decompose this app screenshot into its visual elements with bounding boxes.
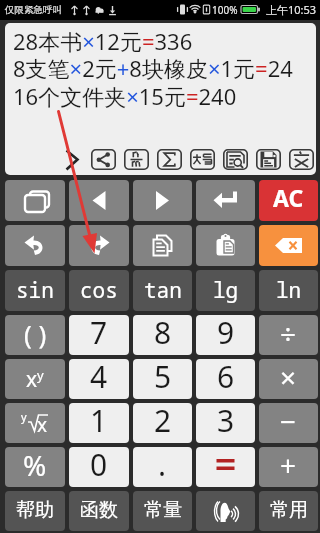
- button[interactable]: Expand: [61, 149, 83, 171]
- staticText: 7: [90, 315, 108, 352]
- staticText: AC: [273, 182, 304, 213]
- staticText: 5: [154, 359, 172, 396]
- button[interactable]: 帮助: [5, 491, 65, 531]
- staticText: .: [158, 447, 167, 484]
- button[interactable]: 0: [69, 447, 129, 487]
- staticText: x: [37, 412, 48, 438]
- staticText: 100%: [212, 3, 238, 17]
- staticText: 1: [90, 403, 108, 440]
- button[interactable]: Sum: [157, 149, 182, 170]
- staticText: 常用: [270, 498, 308, 522]
- button[interactable]: 1: [69, 403, 129, 443]
- button[interactable]: −: [259, 403, 318, 443]
- button[interactable]: Move right: [133, 180, 192, 221]
- staticText: ln: [276, 276, 302, 305]
- staticText: 8: [154, 315, 172, 352]
- button[interactable]: Fraction: [124, 149, 149, 170]
- button[interactable]: 3: [196, 403, 255, 443]
- staticText: 3: [217, 403, 235, 440]
- staticText: tan: [144, 276, 182, 305]
- button[interactable]: AC: [259, 180, 318, 221]
- button[interactable]: Text: [289, 149, 314, 170]
- staticText: ( ): [24, 316, 47, 351]
- button[interactable]: ( ): [5, 315, 65, 355]
- staticText: 帮助: [16, 498, 54, 522]
- button[interactable]: Redo: [69, 225, 129, 266]
- button[interactable]: 4: [69, 359, 129, 399]
- staticText: cos: [80, 276, 118, 305]
- button[interactable]: Move left: [69, 180, 129, 221]
- staticText: −: [280, 403, 297, 440]
- staticText: 0: [90, 447, 108, 484]
- button[interactable]: Paste: [196, 225, 255, 266]
- button[interactable]: Enter: [196, 180, 255, 221]
- button[interactable]: Undo: [5, 225, 65, 266]
- button[interactable]: sin: [5, 270, 65, 311]
- staticText: 仅限紧急呼叫: [5, 4, 62, 16]
- button[interactable]: Equals: [196, 447, 255, 487]
- staticText: lg: [213, 276, 239, 305]
- staticText: %: [23, 447, 47, 484]
- button[interactable]: ×: [259, 359, 318, 399]
- staticText: 9: [217, 315, 235, 352]
- button[interactable]: Share: [91, 149, 116, 170]
- button[interactable]: 8: [133, 315, 192, 355]
- staticText: 4: [90, 359, 108, 396]
- button[interactable]: Search: [223, 149, 248, 170]
- button[interactable]: 常用: [259, 491, 318, 531]
- button[interactable]: x to the power y: [5, 359, 65, 399]
- button[interactable]: .: [133, 447, 192, 487]
- button[interactable]: 6: [196, 359, 255, 399]
- staticText: 函数: [80, 498, 118, 522]
- button[interactable]: Windows: [5, 180, 65, 221]
- staticText: ÷: [280, 315, 297, 352]
- button[interactable]: %: [5, 447, 65, 487]
- button[interactable]: Save: [256, 149, 281, 170]
- staticText: 6: [217, 359, 235, 396]
- staticText: 28本书×12元=336 8支笔×2元+8块橡皮×1元=24 16个文件夹×15…: [13, 26, 293, 111]
- button[interactable]: 5: [133, 359, 192, 399]
- button[interactable]: tan: [133, 270, 192, 311]
- staticText: 常量: [144, 498, 182, 522]
- button[interactable]: 函数: [69, 491, 129, 531]
- button[interactable]: Copy: [133, 225, 192, 266]
- button[interactable]: ÷: [259, 315, 318, 355]
- button[interactable]: 常量: [133, 491, 192, 531]
- staticText: sin: [16, 276, 54, 305]
- button[interactable]: Backspace: [259, 225, 318, 266]
- staticText: y: [21, 409, 27, 424]
- staticText: +: [280, 447, 297, 484]
- button[interactable]: Uppercase: [190, 149, 215, 170]
- button[interactable]: +: [259, 447, 318, 487]
- staticText: ×: [280, 359, 297, 396]
- staticText: 上午10:53: [266, 2, 317, 17]
- button[interactable]: cos: [69, 270, 129, 311]
- button[interactable]: lg: [196, 270, 255, 311]
- button[interactable]: 7: [69, 315, 129, 355]
- staticText: 2: [154, 403, 172, 440]
- button[interactable]: Sound: [196, 491, 255, 531]
- button[interactable]: 9: [196, 315, 255, 355]
- button[interactable]: 2: [133, 403, 192, 443]
- button[interactable]: Nth root: [5, 403, 65, 443]
- staticText: xy: [26, 365, 44, 394]
- button[interactable]: ln: [259, 270, 318, 311]
